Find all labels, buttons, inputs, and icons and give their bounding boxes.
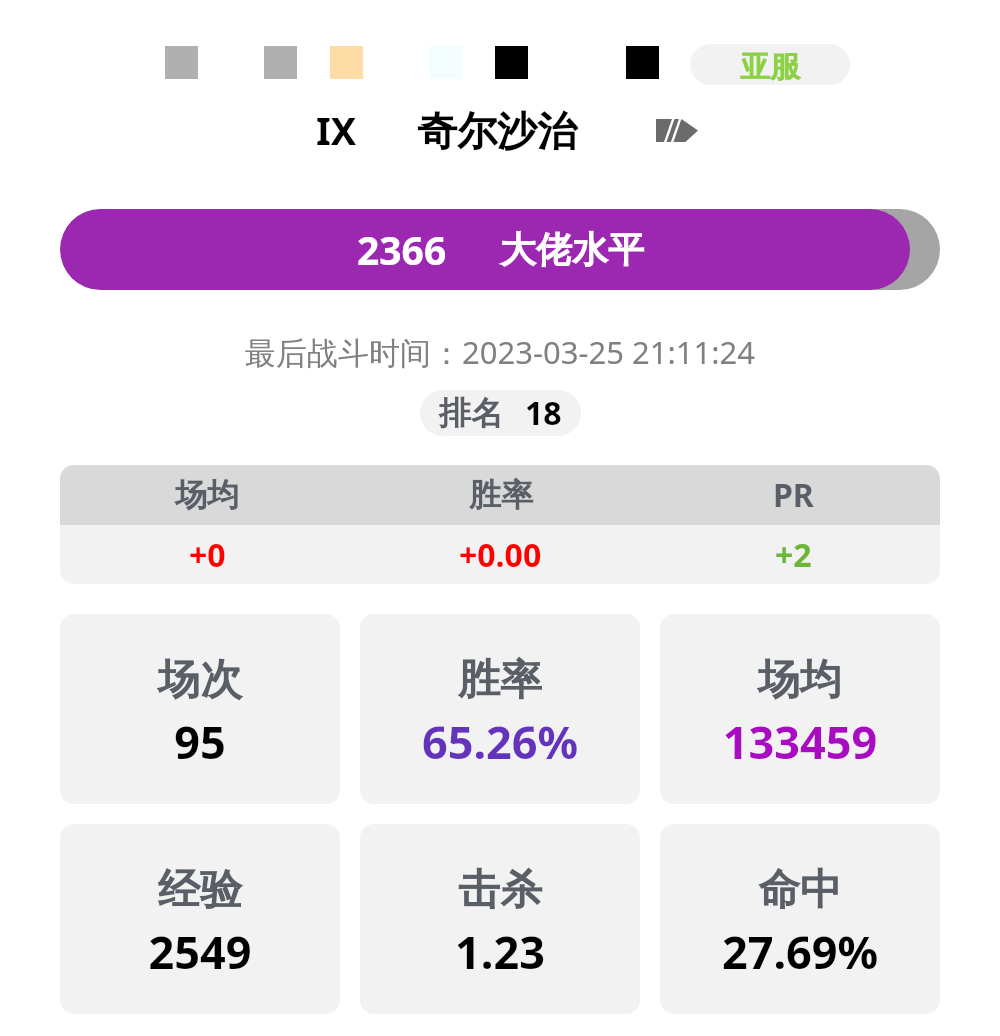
staticText: 1.23 [360,921,640,982]
button[interactable]: 胜率 [360,614,640,804]
button[interactable]: +2 [647,525,940,584]
button[interactable]: 击杀 [360,824,640,1014]
button[interactable]: 命中 [660,824,940,1014]
staticText: +0.00 [459,533,542,577]
button[interactable]: +0 [60,525,354,584]
button[interactable]: 排名 [420,390,581,436]
staticText: 胜率 [360,654,640,707]
staticText: 场均 [175,475,239,515]
staticText: 场均 [660,654,940,707]
staticText: 场次 [60,654,340,707]
button[interactable]: 胜率 [354,465,647,525]
button[interactable]: 亚服 [690,44,850,85]
button[interactable]: PR [647,465,940,525]
button[interactable]: 场均 [60,465,354,525]
staticText: 133459 [660,711,940,772]
staticText: +0 [189,533,226,577]
staticText: 65.26% [360,711,640,772]
staticText: 2549 [60,921,340,982]
staticText: 大佬水平 [500,227,644,272]
staticText: 95 [60,711,340,772]
button[interactable]: +0.00 [354,525,647,584]
staticText: 2366 [357,223,447,276]
staticText: 经验 [60,864,340,917]
staticText: PR [773,473,814,517]
button[interactable]: 经验 [60,824,340,1014]
staticText: 亚服 [740,48,800,85]
staticText: 胜率 [469,475,533,515]
staticText: 排名 [439,393,503,433]
staticText: 27.69% [660,921,940,982]
button[interactable]: IX 奇尔沙治 [316,102,578,154]
button[interactable]: Show tank details [656,119,698,142]
staticText: 18 [525,391,562,435]
staticText: +2 [775,533,812,577]
button[interactable]: 场次 [60,614,340,804]
button[interactable]: 2366 [60,209,940,290]
staticText: 最后战斗时间：2023-03-25 21:11:24 [0,331,1000,373]
button[interactable]: 场均 [660,614,940,804]
staticText: 击杀 [360,864,640,917]
staticText: 命中 [660,864,940,917]
